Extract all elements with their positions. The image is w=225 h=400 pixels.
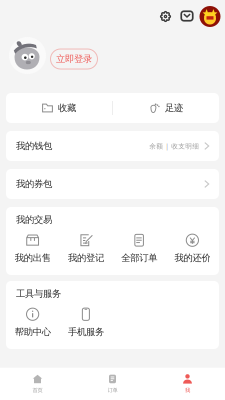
staticText: 我的券包 [16,178,52,190]
button[interactable]: 订单 [75,374,150,394]
button[interactable]: 我的登记 [59,229,112,267]
button[interactable]: 首页 [0,374,75,394]
button[interactable]: 我的出售 [6,229,59,267]
staticText: 订单 [107,387,117,394]
button[interactable]: 手机服务 [59,303,112,341]
button[interactable]: 我的券包 [6,169,219,199]
staticText: 立即登录 [56,53,92,65]
button[interactable]: Messages [178,7,196,25]
button[interactable]: 足迹 [113,93,219,123]
staticText: 我的出售 [15,252,51,264]
button[interactable]: 我的钱包 [6,131,219,161]
button[interactable]: 我的还价 [166,229,219,267]
button[interactable]: 全部订单 [112,229,166,267]
button[interactable]: Profile avatar [199,6,220,27]
staticText: 手机服务 [68,326,104,338]
staticText: 全部订单 [121,252,157,264]
button[interactable]: 收藏 [6,93,112,123]
staticText: 我的交易 [16,214,52,225]
staticText: 收藏 [58,102,76,114]
button[interactable]: 立即登录 [50,49,97,69]
staticText: 足迹 [165,102,183,114]
button[interactable]: Settings [156,7,174,25]
staticText: 工具与服务 [16,288,61,299]
staticText: 余额 | 收支明细 [149,142,199,150]
staticText: 我 [185,387,190,394]
staticText: 首页 [32,387,42,394]
staticText: 我的登记 [68,252,104,264]
staticText: 我的钱包 [16,140,52,152]
staticText: 我的还价 [174,252,210,264]
button[interactable]: 我 [150,374,225,394]
staticText: 帮助中心 [15,326,51,338]
button[interactable]: 帮助中心 [6,303,59,341]
